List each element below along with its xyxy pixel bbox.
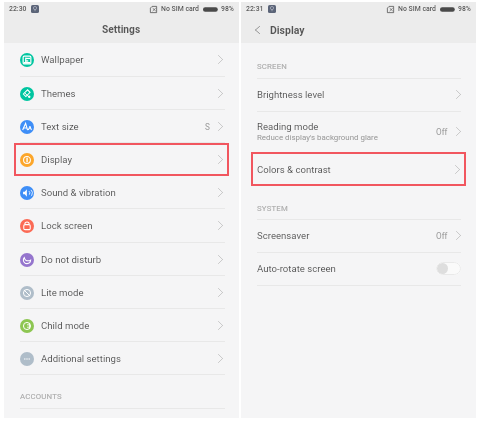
- staticText: Lite mode: [41, 287, 84, 298]
- button[interactable]: Sound & vibration: [4, 176, 239, 209]
- staticText: Off: [436, 231, 448, 241]
- button[interactable]: Lite mode: [4, 276, 239, 309]
- staticText: ACCOUNTS: [20, 392, 62, 401]
- staticText: 98%: [221, 5, 234, 13]
- staticText: SCREEN: [257, 62, 288, 71]
- staticText: SYSTEM: [257, 204, 288, 213]
- button[interactable]: Do not disturb: [4, 243, 239, 276]
- staticText: Do not disturb: [41, 254, 102, 265]
- button[interactable]: Colors & contrast: [251, 152, 466, 186]
- staticText: Off: [436, 127, 448, 137]
- staticText: 22:30: [9, 5, 27, 13]
- staticText: 22:31: [246, 5, 264, 13]
- staticText: Themes: [41, 88, 76, 99]
- staticText: Child mode: [41, 320, 90, 331]
- staticText: Display: [270, 24, 305, 36]
- staticText: Text size: [41, 121, 79, 132]
- staticText: Settings: [102, 24, 141, 36]
- button[interactable]: Back: [250, 23, 264, 37]
- button[interactable]: Brightness level: [241, 78, 476, 111]
- staticText: No SIM card: [398, 5, 436, 13]
- staticText: Reading mode: [257, 121, 319, 132]
- button[interactable]: Lock screen: [4, 209, 239, 242]
- staticText: Colors & contrast: [257, 164, 331, 175]
- button[interactable]: Reading mode: [241, 111, 476, 152]
- staticText: Display: [41, 154, 72, 165]
- button[interactable]: Display: [14, 143, 229, 176]
- staticText: Screensaver: [257, 230, 310, 241]
- button[interactable]: Auto-rotate screen: [241, 252, 476, 285]
- staticText: Lock screen: [41, 220, 93, 231]
- button[interactable]: Wallpaper: [4, 43, 239, 76]
- button[interactable]: Auto-rotate screen toggle: [436, 262, 461, 275]
- staticText: Reduce display's background glare: [257, 133, 378, 142]
- staticText: S: [205, 122, 210, 132]
- staticText: 98%: [458, 5, 471, 13]
- staticText: Additional settings: [41, 353, 121, 364]
- staticText: Sound & vibration: [41, 187, 116, 198]
- staticText: No SIM card: [161, 5, 199, 13]
- button[interactable]: Themes: [4, 77, 239, 110]
- staticText: Brightness level: [257, 89, 325, 100]
- staticText: Auto-rotate screen: [257, 263, 336, 274]
- button[interactable]: Additional settings: [4, 342, 239, 375]
- button[interactable]: Child mode: [4, 309, 239, 342]
- button[interactable]: Screensaver: [241, 219, 476, 252]
- staticText: Wallpaper: [41, 54, 84, 65]
- button[interactable]: Text size: [4, 110, 239, 143]
